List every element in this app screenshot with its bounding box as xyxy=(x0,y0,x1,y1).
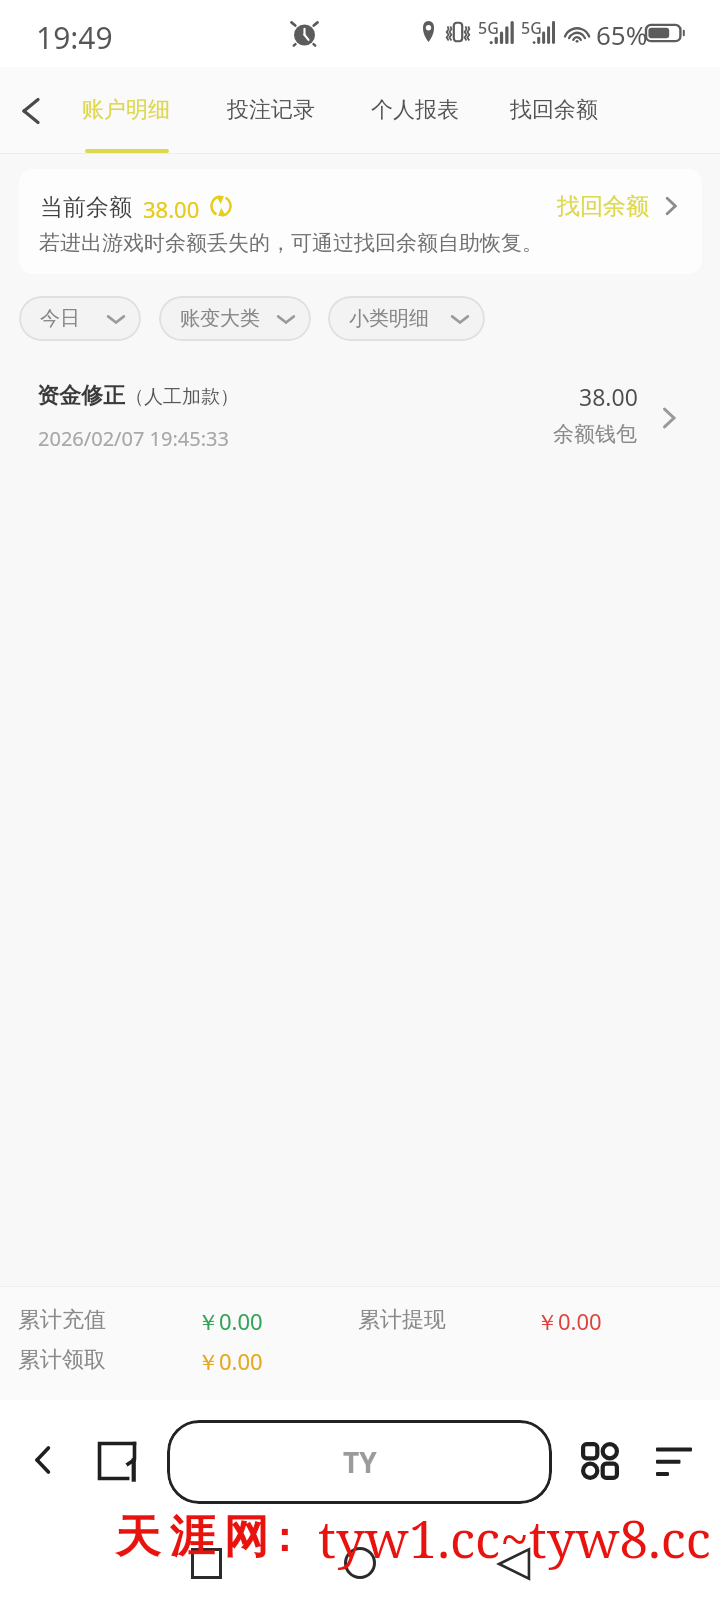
button[interactable]: 找回余额 xyxy=(498,67,612,154)
staticText: 当前余额 xyxy=(40,193,132,222)
button[interactable]: Apps xyxy=(576,1437,624,1485)
staticText: ￥0.00 xyxy=(197,1346,263,1376)
button[interactable]: Tabs xyxy=(92,1436,142,1486)
staticText: 38.00 xyxy=(143,194,200,224)
button[interactable]: 资金修正 xyxy=(0,366,720,456)
button[interactable]: 今日 xyxy=(19,296,141,341)
button[interactable]: Back xyxy=(3,83,59,139)
button[interactable]: Back xyxy=(484,1534,544,1594)
button[interactable]: 投注记录 xyxy=(215,67,329,154)
staticText: （人工加款） xyxy=(125,385,239,409)
staticText: tyw1.cc~tyw8.cc xyxy=(318,1503,711,1572)
staticText: 累计提现 xyxy=(358,1306,446,1334)
staticText: ￥0.00 xyxy=(197,1306,263,1336)
staticText: 38.00 xyxy=(579,381,638,412)
button[interactable]: TY xyxy=(167,1420,552,1504)
staticText: ： xyxy=(264,1512,304,1562)
staticText: 累计领取 xyxy=(18,1346,106,1374)
button[interactable]: Recents xyxy=(176,1533,236,1593)
staticText: 65% xyxy=(596,17,648,52)
staticText: 天涯网 xyxy=(111,1509,273,1566)
staticText: 余额钱包 xyxy=(553,421,637,447)
staticText: 账户明细 xyxy=(82,96,170,124)
staticText: ￥0.00 xyxy=(536,1306,602,1336)
button[interactable]: 找回余额 xyxy=(557,189,683,223)
staticText: 投注记录 xyxy=(227,96,315,124)
button[interactable]: 小类明细 xyxy=(328,296,485,341)
button[interactable]: 账户明细 xyxy=(70,67,184,154)
staticText: 资金修正 xyxy=(37,382,125,410)
button[interactable]: 个人报表 xyxy=(359,67,473,154)
staticText: 找回余额 xyxy=(557,192,649,221)
button[interactable]: Menu xyxy=(650,1437,698,1485)
button[interactable]: Back xyxy=(19,1436,67,1484)
staticText: 个人报表 xyxy=(371,96,459,124)
staticText: 今日 xyxy=(40,306,80,331)
staticText: 19:49 xyxy=(36,17,113,58)
staticText: 若进出游戏时余额丢失的，可通过找回余额自助恢复。 xyxy=(39,230,543,256)
staticText: 2026/02/07 19:45:33 xyxy=(38,425,229,452)
staticText: 累计充值 xyxy=(18,1306,106,1334)
staticText: 账变大类 xyxy=(180,306,260,331)
staticText: TY xyxy=(343,1443,377,1481)
button[interactable]: 账变大类 xyxy=(159,296,311,341)
staticText: 找回余额 xyxy=(510,96,598,124)
staticText: 5G xyxy=(478,17,499,39)
button[interactable]: Home xyxy=(330,1533,390,1593)
staticText: 小类明细 xyxy=(349,306,429,331)
button[interactable]: 当前余额 xyxy=(19,169,702,274)
staticText: 5G xyxy=(521,17,542,39)
